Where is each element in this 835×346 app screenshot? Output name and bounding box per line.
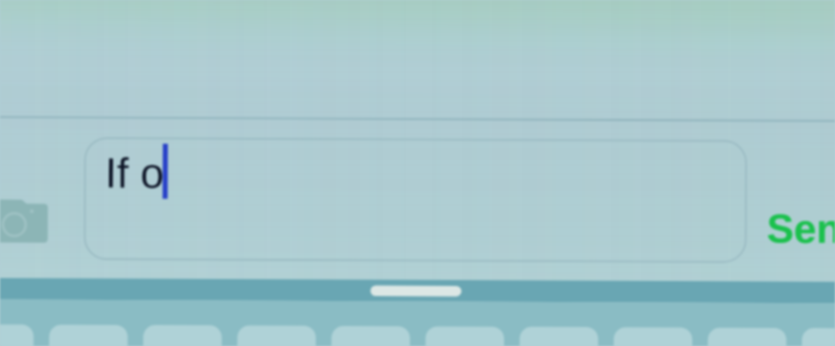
button[interactable]: Home: [360, 279, 474, 301]
button[interactable]: Key: [238, 326, 317, 346]
button[interactable]: Key: [708, 326, 787, 346]
button[interactable]: Send: [758, 190, 835, 256]
button[interactable]: Key: [802, 326, 835, 346]
button[interactable]: Key: [426, 326, 505, 346]
button[interactable]: Key: [144, 326, 223, 346]
button[interactable]: Key: [614, 326, 693, 346]
staticText: If o: [105, 150, 165, 197]
button[interactable]: Message: [85, 139, 746, 261]
button[interactable]: Key: [50, 326, 129, 346]
staticText: Send: [767, 206, 835, 251]
button[interactable]: Take photo: [0, 190, 58, 254]
button[interactable]: Key: [0, 326, 35, 346]
button[interactable]: Key: [520, 326, 599, 346]
button[interactable]: Key: [332, 326, 411, 346]
